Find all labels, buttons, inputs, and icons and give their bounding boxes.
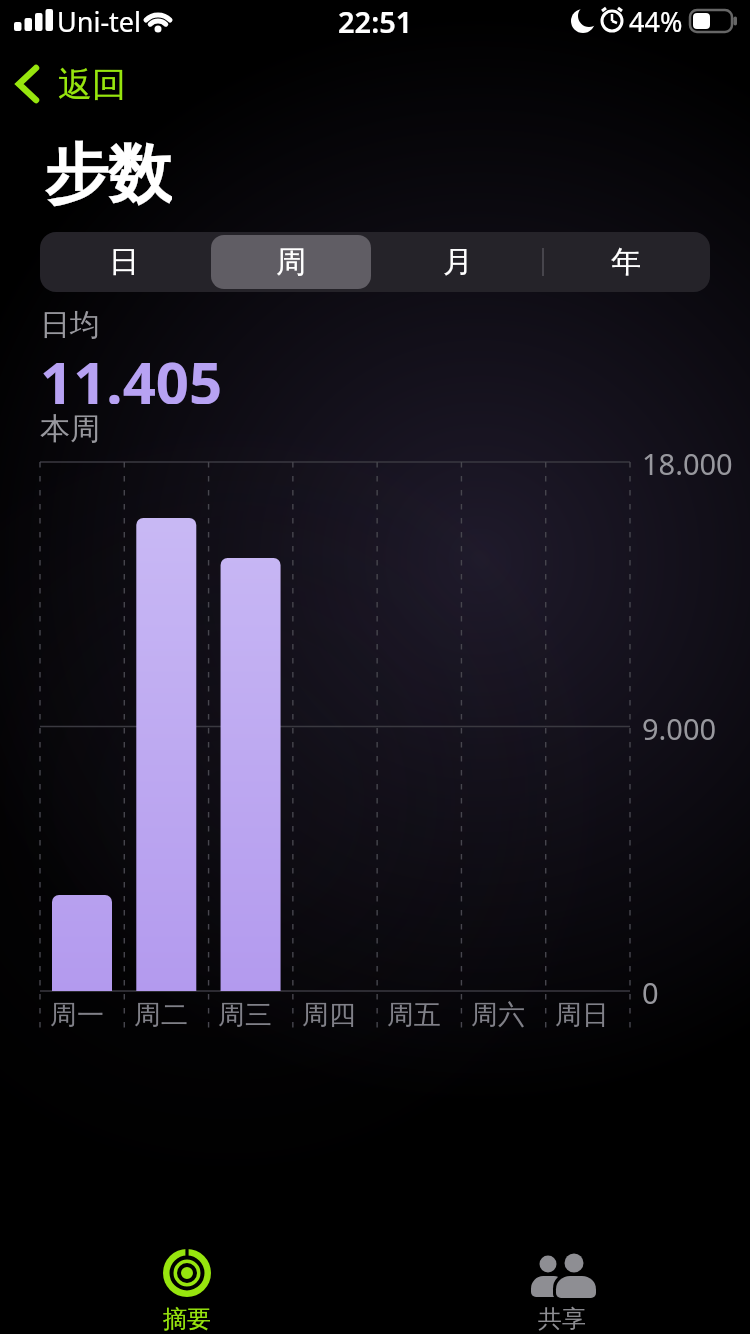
staticText: 日均 xyxy=(40,306,100,340)
staticText: 周五 xyxy=(387,998,441,1030)
button[interactable]: 日 xyxy=(40,232,207,292)
staticText: 月 xyxy=(443,243,473,281)
staticText: 周六 xyxy=(471,998,525,1030)
staticText: 9.000 xyxy=(642,709,717,745)
staticText: 0 xyxy=(642,973,659,1009)
staticText: 22:51 xyxy=(338,2,413,41)
button[interactable]: 年 xyxy=(542,232,710,292)
staticText: 周 xyxy=(276,243,306,281)
staticText: 日 xyxy=(109,243,139,281)
staticText: 摘要 xyxy=(163,1304,211,1334)
staticText: 周三 xyxy=(218,998,272,1030)
staticText: 步数 xyxy=(44,134,172,210)
staticText: 年 xyxy=(611,243,641,281)
staticText: Uni-tel xyxy=(57,3,142,40)
staticText: 18.000 xyxy=(642,444,733,480)
staticText: 周四 xyxy=(302,998,356,1030)
staticText: 周二 xyxy=(134,998,188,1030)
staticText: 11.405 xyxy=(40,342,223,404)
staticText: 共享 xyxy=(538,1304,586,1334)
button[interactable]: 月 xyxy=(374,232,542,292)
staticText: 44% xyxy=(629,3,683,40)
staticText: 周日 xyxy=(555,998,609,1030)
button[interactable]: 返回 xyxy=(10,60,140,108)
staticText: 本周 xyxy=(40,410,100,446)
staticText: 周一 xyxy=(50,998,104,1030)
button[interactable]: 摘要 xyxy=(112,1240,262,1334)
button[interactable]: 周 xyxy=(207,232,374,292)
button[interactable]: 共享 xyxy=(487,1240,637,1334)
staticText: 返回 xyxy=(58,63,126,106)
